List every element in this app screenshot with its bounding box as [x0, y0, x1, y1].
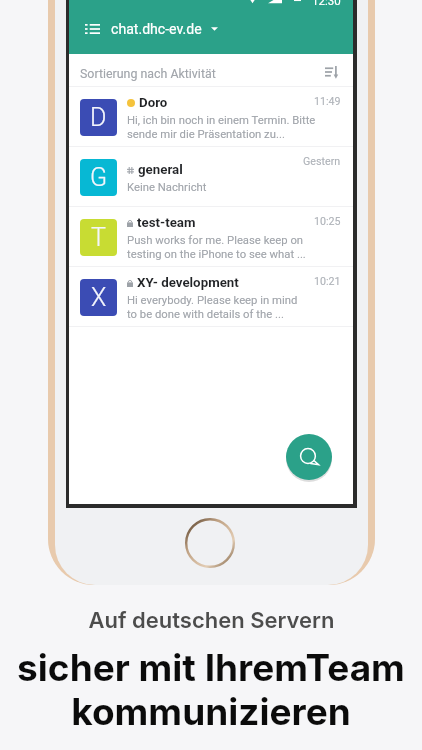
button[interactable]: D [69, 87, 353, 147]
button[interactable]: Sortierung nach Aktivität [69, 54, 353, 87]
staticText: 11:49 [314, 95, 341, 108]
staticText: general [138, 162, 183, 178]
staticText: Auf deutschen Servern [88, 607, 335, 634]
staticText: chat.dhc-ev.de [111, 21, 202, 38]
button[interactable]: X [69, 267, 353, 327]
staticText: XY- development [137, 275, 239, 291]
staticText: Hi, ich bin noch in einem Termin. Bitte … [127, 114, 316, 141]
button[interactable]: chat.dhc-ev.de [111, 14, 218, 44]
button[interactable]: G [69, 147, 353, 207]
staticText: 10:25 [314, 215, 341, 228]
staticText: 12:30 [312, 0, 341, 6]
button[interactable]: Change sort order [325, 66, 342, 81]
staticText: 10:21 [314, 275, 341, 288]
staticText: test-team [137, 215, 196, 231]
staticText: G [90, 163, 108, 192]
staticText: D [90, 103, 107, 132]
button[interactable]: T [69, 207, 353, 267]
staticText: Doro [139, 95, 168, 111]
staticText: T [91, 223, 106, 252]
staticText: Sortierung nach Aktivität [80, 66, 216, 81]
staticText: Gestern [303, 155, 341, 168]
staticText: Keine Nachricht [127, 181, 207, 194]
staticText: Hi everybody. Please keep in mind to be … [127, 294, 298, 321]
staticText: sicher mit IhremTeam kommunizieren [17, 645, 405, 734]
button[interactable]: Open navigation menu [80, 17, 104, 41]
staticText: X [91, 283, 107, 312]
staticText: Push works for me. Please keep on testin… [127, 234, 306, 261]
button[interactable]: New conversation [286, 434, 332, 480]
